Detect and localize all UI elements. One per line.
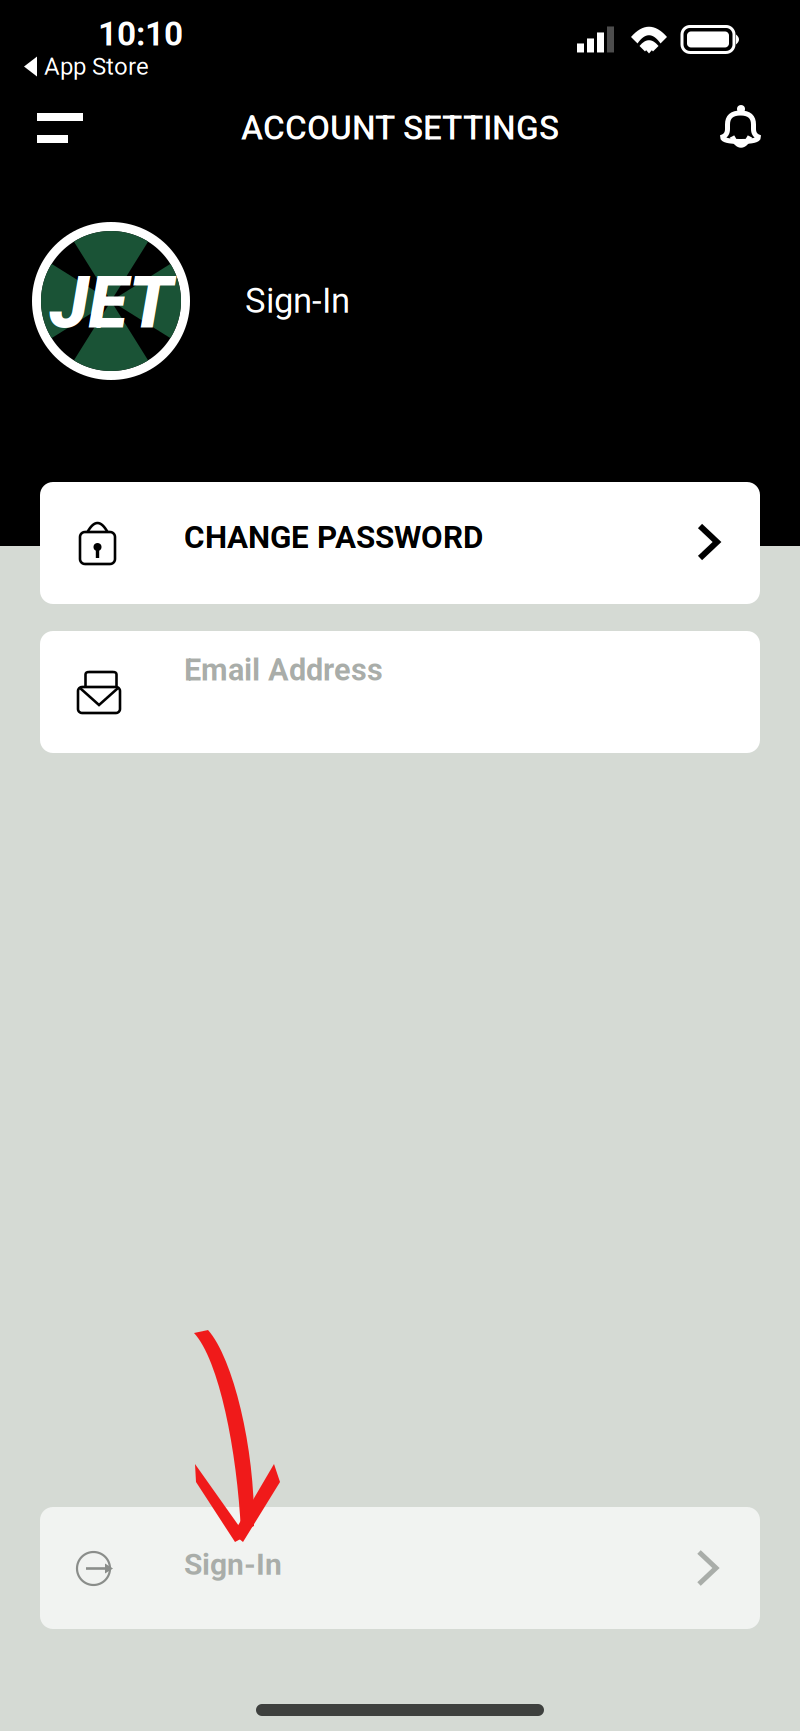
- button[interactable]: Menu: [0, 92, 120, 164]
- staticText: JET: [49, 261, 172, 345]
- staticText: CHANGE PASSWORD: [184, 519, 483, 556]
- staticText: 10:10: [98, 14, 183, 54]
- button[interactable]: Notifications: [682, 92, 800, 164]
- button[interactable]: CHANGE PASSWORD: [40, 482, 760, 604]
- staticText: Email Address: [184, 652, 383, 688]
- staticText: ACCOUNT SETTINGS: [241, 108, 559, 148]
- staticText: Sign-In: [245, 281, 350, 321]
- staticText: App Store: [44, 52, 149, 81]
- staticText: Sign-In: [184, 1547, 282, 1582]
- button[interactable]: Sign-In: [40, 1507, 760, 1629]
- button[interactable]: Email Address: [40, 631, 760, 753]
